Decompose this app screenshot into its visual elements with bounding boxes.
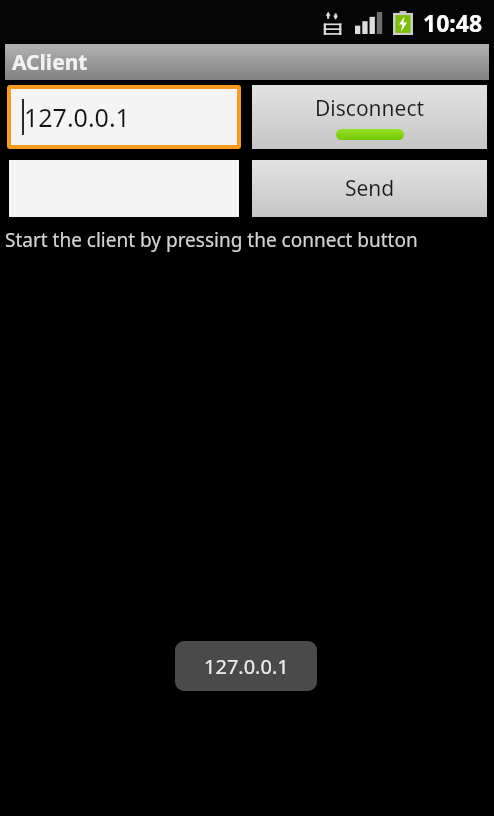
staticText: 10:48 [423,7,483,38]
staticText: 127.0.0.1 [24,100,130,134]
staticText: Start the client by pressing the connect… [5,227,418,253]
button[interactable]: Disconnect [252,85,487,149]
button[interactable]: 127.0.0.1 [11,89,237,145]
button[interactable]: Send [252,160,487,217]
staticText: AClient [12,48,88,77]
staticText: Disconnect [315,94,425,123]
staticText: Send [345,174,395,203]
staticText: 127.0.0.1 [204,653,289,680]
